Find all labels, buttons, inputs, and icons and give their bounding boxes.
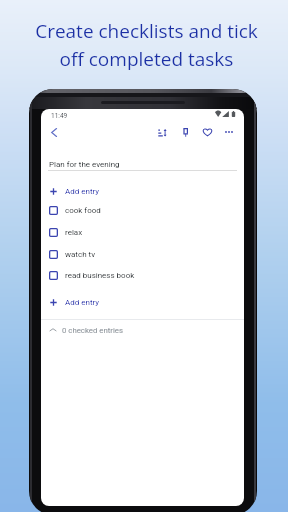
button[interactable]: Sort (153, 123, 171, 141)
staticText: relax (65, 228, 83, 237)
staticText: watch tv (65, 250, 96, 259)
button[interactable]: More options (220, 123, 238, 141)
button[interactable]: cook food (49, 200, 244, 220)
button[interactable]: 0 checked entries (49, 321, 244, 339)
staticText: Add entry (65, 187, 100, 196)
button[interactable]: Add entry (49, 182, 244, 200)
button[interactable]: read business book (49, 265, 244, 285)
button[interactable]: Back (45, 123, 63, 141)
staticText: Plan for the evening (49, 160, 120, 169)
staticText: 0 checked entries (62, 326, 123, 335)
staticText: cook food (65, 206, 101, 215)
button[interactable]: Add entry (49, 293, 244, 311)
staticText: Create checklists and tick off completed… (35, 18, 258, 71)
staticText: read business book (65, 271, 135, 280)
button[interactable]: relax (49, 222, 244, 242)
button[interactable]: Pin (176, 123, 194, 141)
button[interactable]: watch tv (49, 244, 244, 264)
button[interactable]: Favorite (198, 123, 216, 141)
staticText: Add entry (65, 298, 100, 307)
staticText: 11:49 (51, 112, 68, 120)
